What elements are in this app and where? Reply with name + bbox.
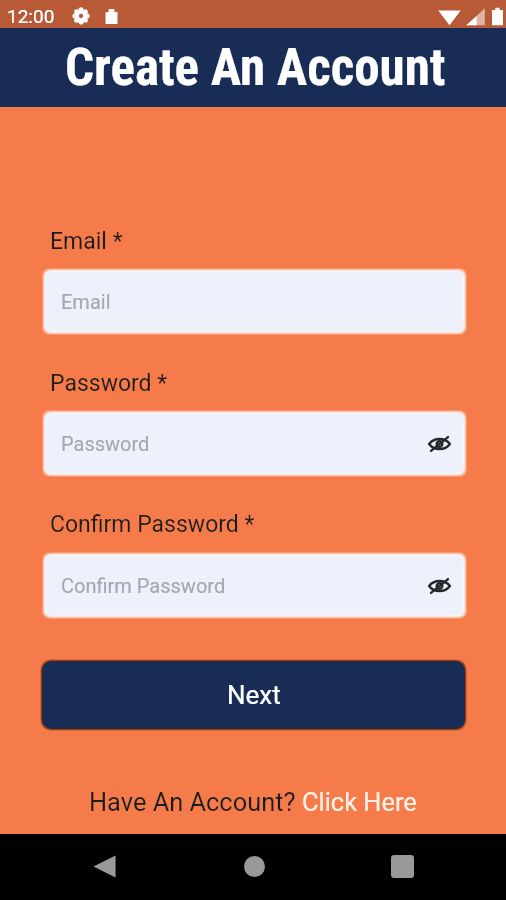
button[interactable]: Back [80, 842, 128, 890]
staticText: Password * [50, 370, 168, 397]
button[interactable]: Show password [424, 571, 454, 601]
staticText: Next [227, 680, 281, 710]
staticText: 12:00 [7, 5, 55, 27]
staticText: Confirm Password * [50, 511, 255, 538]
button[interactable]: Home [230, 842, 278, 890]
button[interactable]: Email [42, 268, 467, 335]
staticText: Click Here [302, 787, 417, 817]
staticText: Email [61, 290, 111, 313]
button[interactable]: Password [42, 410, 467, 477]
button[interactable]: Confirm Password [42, 552, 467, 619]
staticText: Password [61, 432, 150, 455]
staticText: Have An Account? [89, 787, 302, 817]
button[interactable]: Create An Account [0, 28, 506, 107]
staticText: Confirm Password [61, 574, 226, 597]
button[interactable]: Have An Account? [89, 787, 417, 817]
staticText: Email * [50, 228, 123, 255]
button[interactable]: Next [40, 659, 467, 731]
button[interactable]: Show password [424, 429, 454, 459]
staticText: Create An Account [65, 38, 446, 98]
button[interactable]: Recent apps [378, 842, 426, 890]
